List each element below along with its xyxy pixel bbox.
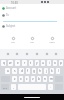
button[interactable]: j: [44, 68, 48, 74]
staticText: l: [58, 69, 59, 73]
staticText: c: [26, 77, 28, 81]
button[interactable]: a: [5, 68, 10, 74]
button[interactable]: g: [32, 68, 36, 74]
button[interactable]: p: [59, 60, 63, 66]
button[interactable]: e: [15, 60, 20, 66]
staticText: h: [39, 69, 41, 73]
button[interactable]: o: [53, 60, 57, 66]
staticText: w: [9, 61, 12, 65]
button[interactable]: Pay: [6, 37, 20, 44]
staticText: q: [3, 61, 5, 65]
button[interactable]: n: [43, 76, 47, 82]
staticText: Account: [6, 6, 17, 10]
staticText: r: [24, 61, 26, 65]
staticText: .: [50, 85, 51, 89]
button[interactable]: f: [26, 68, 30, 74]
staticText: n: [44, 77, 46, 81]
staticText: Subject: [6, 24, 16, 28]
button[interactable]: x: [19, 76, 23, 82]
staticText: ?12: [3, 86, 7, 89]
button[interactable]: Tool2: [25, 52, 29, 56]
button[interactable]: .: [48, 84, 53, 90]
button[interactable]: Account: [0, 6, 64, 10]
staticText: g: [33, 69, 35, 73]
staticText: x: [20, 77, 22, 81]
button[interactable]: ?12: [1, 84, 9, 90]
button[interactable]: ,: [11, 84, 16, 90]
button[interactable]: Subject: [0, 24, 64, 28]
button[interactable]: q: [1, 60, 6, 66]
button[interactable]: m: [49, 76, 53, 82]
button[interactable]: l: [56, 68, 60, 74]
button[interactable]: z: [12, 76, 17, 82]
staticText: 10:30: [11, 1, 18, 5]
staticText: j: [46, 69, 47, 73]
staticText: a: [7, 69, 9, 73]
button[interactable]: t: [29, 60, 33, 66]
staticText: ,: [13, 85, 14, 89]
button[interactable]: s: [12, 68, 17, 74]
button[interactable]: w: [8, 60, 13, 66]
staticText: i: [49, 61, 50, 65]
staticText: Call: [30, 41, 34, 44]
button[interactable]: b: [37, 76, 41, 82]
button[interactable]: Call: [25, 37, 39, 44]
button[interactable]: More: [45, 37, 59, 44]
staticText: t: [30, 61, 32, 65]
button[interactable]: Tool4: [45, 52, 49, 56]
staticText: e: [17, 61, 19, 65]
staticText: f: [27, 69, 29, 73]
staticText: b: [38, 77, 40, 81]
button[interactable]: To: [0, 13, 64, 17]
staticText: To: [6, 13, 9, 17]
button[interactable]: r: [22, 60, 27, 66]
button[interactable]: c: [25, 76, 29, 82]
staticText: z: [14, 77, 16, 81]
staticText: y: [36, 61, 38, 65]
button[interactable]: Tool5: [54, 52, 58, 56]
button[interactable]: k: [50, 68, 54, 74]
button[interactable]: i: [47, 60, 51, 66]
button[interactable]: u: [41, 60, 45, 66]
button[interactable]: v: [31, 76, 35, 82]
staticText: u: [42, 61, 44, 65]
staticText: More: [49, 41, 55, 44]
button[interactable]: Tool3: [35, 52, 39, 56]
button[interactable]: Tool0: [6, 52, 10, 56]
staticText: p: [60, 61, 62, 65]
staticText: s: [14, 69, 16, 73]
staticText: m: [50, 77, 53, 81]
staticText: d: [21, 69, 23, 73]
staticText: v: [32, 77, 34, 81]
staticText: o: [54, 61, 56, 65]
staticText: Pay: [11, 41, 15, 44]
button[interactable]: h: [38, 68, 42, 74]
button[interactable]: Tool1: [15, 52, 19, 56]
button[interactable]: d: [19, 68, 24, 74]
staticText: k: [51, 69, 53, 73]
button[interactable]: y: [35, 60, 39, 66]
